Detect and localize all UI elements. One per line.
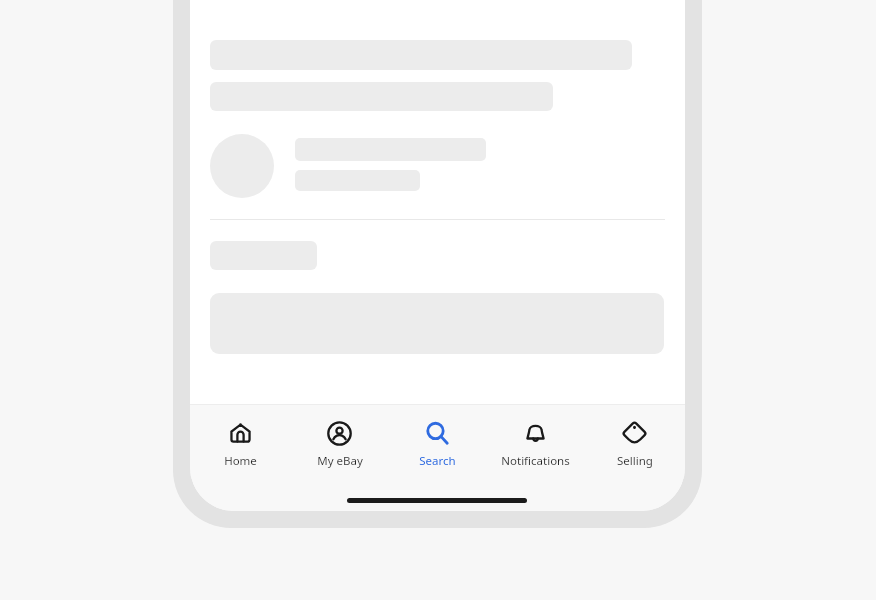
button[interactable]: My eBay	[292, 418, 387, 469]
button[interactable]: Notifications	[488, 418, 583, 469]
staticText: Selling	[617, 453, 653, 469]
staticText: My eBay	[317, 453, 363, 469]
button[interactable]: Selling	[587, 418, 682, 469]
button[interactable]: Search	[390, 418, 485, 469]
staticText: Home	[224, 453, 257, 469]
button[interactable]: Home	[193, 418, 288, 469]
staticText: Search	[419, 453, 456, 469]
staticText: Notifications	[501, 453, 570, 469]
